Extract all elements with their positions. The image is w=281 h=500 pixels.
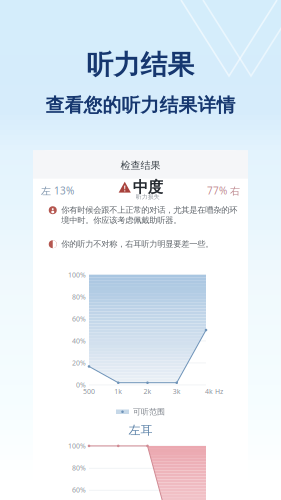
- staticText: 你有时候会跟不上正常的对话，尤其是在嘈杂的环境中时。你应该考虑佩戴助听器。: [61, 205, 237, 225]
- staticText: 40%: [72, 336, 86, 345]
- staticText: 听力损失: [136, 193, 160, 200]
- staticText: 你的听力不对称，右耳听力明显要差一些。: [61, 239, 213, 249]
- staticText: 检查结果: [120, 159, 160, 172]
- staticText: 1k: [114, 386, 122, 396]
- staticText: 100%: [68, 270, 86, 279]
- staticText: 可听范围: [133, 407, 165, 417]
- staticText: 4k Hz: [205, 386, 223, 396]
- staticText: 0%: [76, 380, 86, 389]
- staticText: 80%: [72, 292, 86, 301]
- staticText: 左 13%: [41, 184, 74, 197]
- staticText: 2k: [143, 386, 151, 396]
- staticText: 中度: [133, 178, 163, 197]
- staticText: 80%: [72, 463, 86, 473]
- staticText: 3k: [173, 386, 181, 396]
- staticText: 查看您的听力结果详情: [45, 94, 235, 117]
- staticText: 20%: [72, 358, 86, 367]
- staticText: 听力结果: [86, 48, 194, 82]
- staticText: 60%: [72, 314, 86, 323]
- staticText: 100%: [68, 441, 86, 451]
- staticText: 60%: [72, 485, 86, 495]
- staticText: 左耳: [128, 423, 152, 438]
- staticText: 500: [83, 386, 95, 396]
- staticText: 77% 右: [207, 184, 240, 197]
